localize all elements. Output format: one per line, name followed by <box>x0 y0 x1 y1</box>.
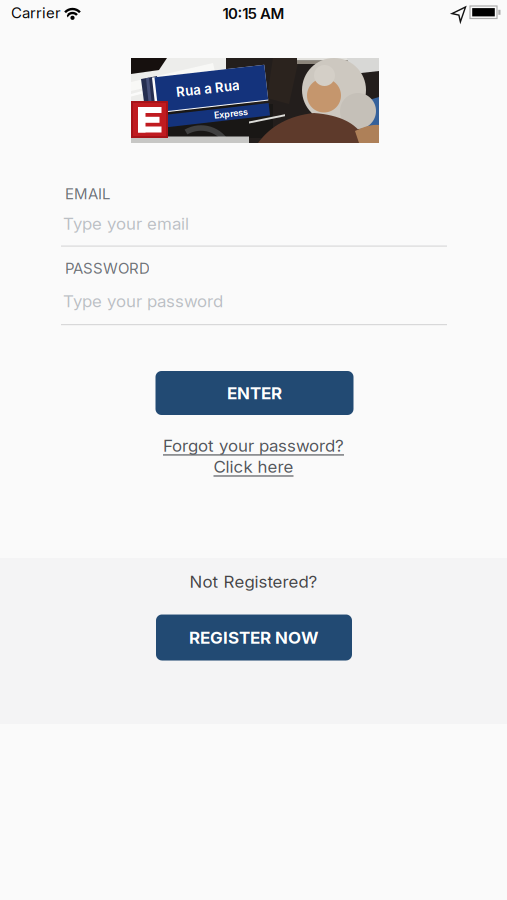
staticText: Express <box>212 110 246 121</box>
staticText: Not Registered? <box>189 571 317 592</box>
staticText: EMAIL <box>65 185 110 203</box>
button[interactable]: REGISTER NOW <box>156 614 352 660</box>
staticText: Forgot your password? <box>163 435 344 455</box>
staticText: 10:15 AM <box>222 5 285 22</box>
button[interactable]: Type your email <box>0 0 386 34</box>
staticText: Type your email <box>63 213 189 234</box>
button[interactable]: Forgot your password? <box>163 435 344 476</box>
staticText: Carrier <box>11 4 61 22</box>
staticText: ENTER <box>227 383 282 403</box>
button[interactable]: ENTER <box>155 371 353 415</box>
button[interactable]: Type your password <box>0 0 386 34</box>
staticText: Rua a Rua <box>177 81 241 96</box>
staticText: Type your password <box>63 291 223 311</box>
staticText: Click here <box>213 456 293 477</box>
staticText: REGISTER NOW <box>189 627 319 648</box>
staticText: PASSWORD <box>65 259 150 277</box>
